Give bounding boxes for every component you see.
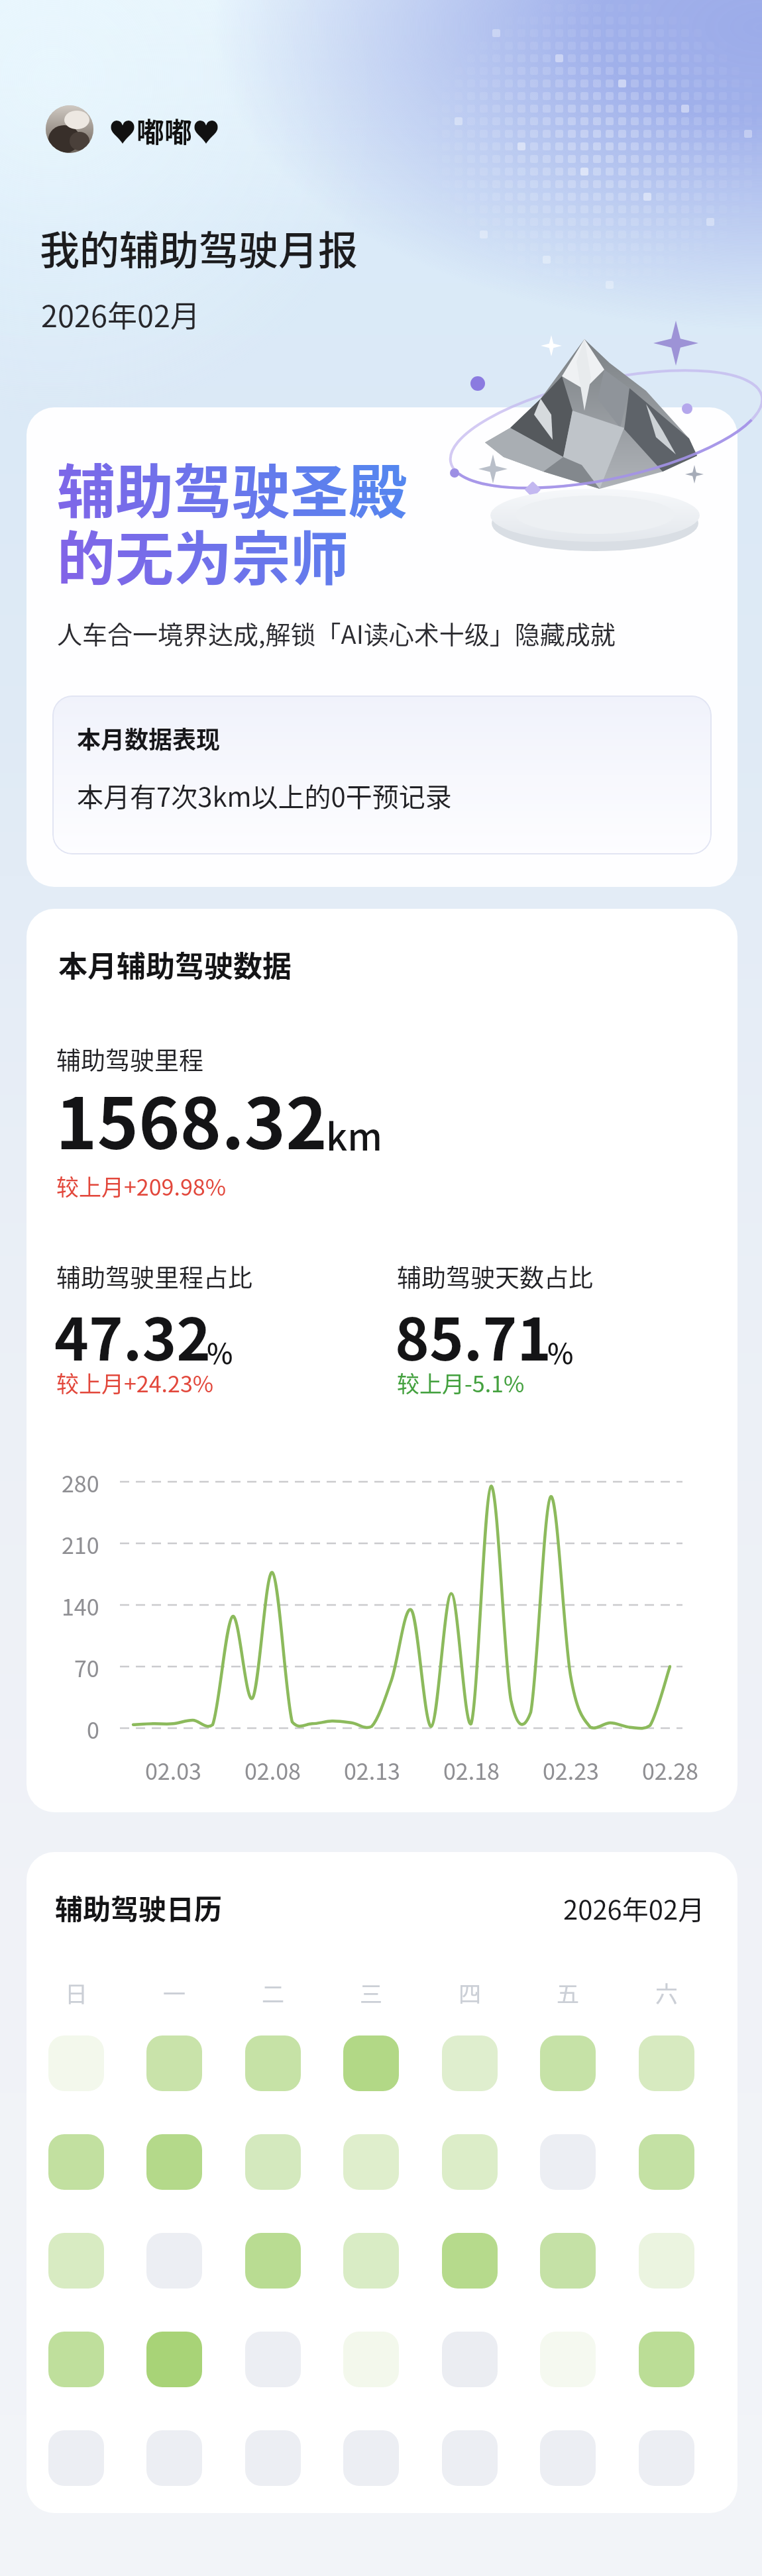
- staticText: 本月辅助驾驶数据: [58, 943, 292, 986]
- staticText: 本月有7次3km以上的0干预记录: [77, 776, 452, 815]
- staticText: 0: [87, 1713, 99, 1745]
- staticText: 较上月+209.98%: [56, 1170, 226, 1202]
- staticText: 02.13: [344, 1754, 400, 1786]
- staticText: 47.32: [54, 1293, 211, 1377]
- staticText: 较上月+24.23%: [56, 1366, 214, 1399]
- staticText: 辅助驾驶日历: [55, 1887, 223, 1928]
- staticText: 02.23: [543, 1754, 599, 1786]
- staticText: km: [326, 1108, 383, 1161]
- staticText: 辅助驾驶圣殿 的无为宗师: [57, 445, 408, 596]
- staticText: 辅助驾驶天数占比: [397, 1259, 593, 1294]
- button[interactable]: [46, 105, 93, 153]
- staticText: 2026年02月: [41, 293, 200, 336]
- staticText: %: [547, 1331, 574, 1372]
- button[interactable]: [27, 909, 737, 1812]
- staticText: ♥嘟嘟♥: [109, 110, 221, 150]
- staticText: 02.08: [245, 1754, 301, 1786]
- staticText: 五: [557, 1977, 579, 2009]
- button[interactable]: [27, 407, 737, 887]
- staticText: 我的辅助驾驶月报: [40, 219, 358, 276]
- staticText: 较上月-5.1%: [397, 1366, 525, 1399]
- staticText: 本月数据表现: [77, 721, 221, 755]
- staticText: 人车合一境界达成,解锁「AI读心术十级」隐藏成就: [57, 615, 616, 651]
- staticText: 02.03: [145, 1754, 201, 1786]
- staticText: 一: [163, 1977, 186, 2009]
- staticText: 辅助驾驶里程占比: [56, 1259, 252, 1294]
- staticText: %: [207, 1331, 233, 1372]
- staticText: 日: [65, 1977, 87, 2009]
- staticText: 02.18: [443, 1754, 500, 1786]
- staticText: 02.28: [642, 1754, 698, 1786]
- staticText: 四: [459, 1977, 481, 2009]
- staticText: 280: [62, 1467, 99, 1499]
- staticText: 2026年02月: [563, 1889, 705, 1928]
- staticText: 1568.32: [56, 1068, 327, 1169]
- staticText: 三: [360, 1977, 382, 2009]
- staticText: 140: [62, 1590, 99, 1622]
- staticText: 210: [62, 1528, 99, 1561]
- staticText: 70: [74, 1651, 99, 1684]
- staticText: 六: [655, 1977, 678, 2009]
- button[interactable]: [27, 1852, 737, 2513]
- staticText: 二: [262, 1977, 284, 2009]
- staticText: 85.71: [395, 1293, 552, 1377]
- staticText: 辅助驾驶里程: [56, 1041, 203, 1077]
